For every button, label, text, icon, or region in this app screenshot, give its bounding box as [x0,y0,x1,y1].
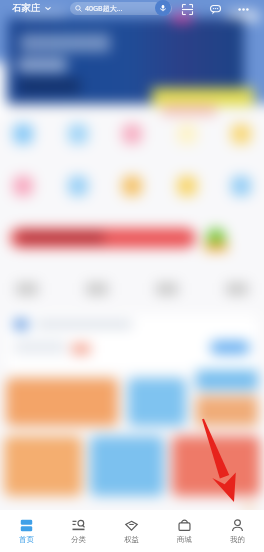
staticText: 权益 [124,535,139,544]
staticText: 石家庄 [12,2,41,14]
staticText: 商城 [177,535,192,544]
button[interactable]: More options [236,2,251,17]
staticText: 分类 [71,535,86,544]
staticText: 40GB超大... [85,4,123,14]
button[interactable]: Messages [208,2,223,17]
button[interactable]: 石家庄 [12,0,52,16]
button[interactable]: 首页 [0,510,52,552]
button[interactable]: Voice search [155,0,171,16]
button[interactable]: Scan [180,2,195,17]
button[interactable]: 商城 [158,510,211,552]
staticText: 我的 [230,535,245,544]
button[interactable]: 我的 [211,510,264,552]
button[interactable]: 40GB超大... [70,2,172,15]
button[interactable]: 分类 [52,510,105,552]
staticText: 首页 [19,535,34,544]
button[interactable]: 权益 [105,510,158,552]
